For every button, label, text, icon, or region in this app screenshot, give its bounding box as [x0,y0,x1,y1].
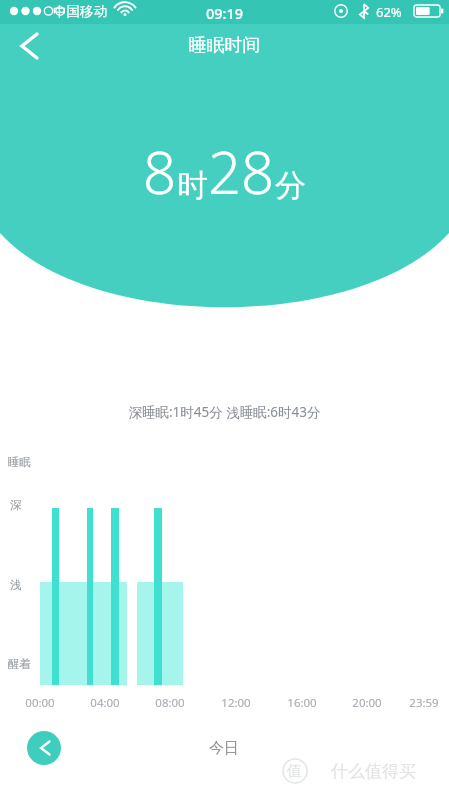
staticText: 08:00 [140,695,200,711]
button[interactable]: Back [6,24,50,68]
staticText: 睡眠 [8,455,58,469]
staticText: 今日 [209,739,239,758]
staticText: 16:00 [272,695,332,711]
staticText: 23:59 [394,695,449,711]
staticText: 分 [275,166,306,205]
staticText: 20:00 [337,695,397,711]
staticText: 醒着 [8,657,58,671]
staticText: 09:19 [0,3,449,23]
staticText: 00:00 [10,695,70,711]
staticText: 深 [10,498,50,512]
staticText: 时 [177,166,208,205]
staticText: 中国移动 [53,3,123,20]
staticText: 8 [143,132,177,211]
staticText: 28 [208,132,275,211]
button[interactable]: 今日 [180,734,268,762]
staticText: 62% [376,3,416,21]
staticText: 睡眠时间 [0,34,449,57]
staticText: 04:00 [75,695,135,711]
staticText: 12:00 [206,695,266,711]
staticText: 什么值得买 [331,761,416,782]
staticText: 值 [287,762,302,781]
staticText: 深睡眠:1时45分 浅睡眠:6时43分 [0,403,449,421]
button[interactable]: Previous day [27,731,61,765]
staticText: 浅 [10,578,50,592]
